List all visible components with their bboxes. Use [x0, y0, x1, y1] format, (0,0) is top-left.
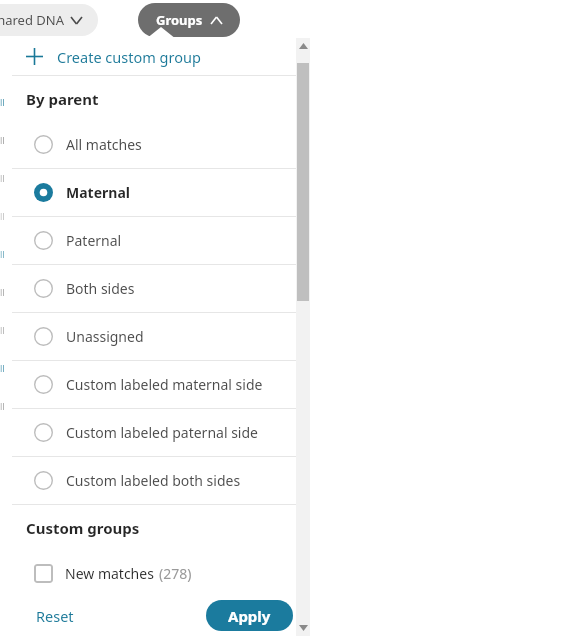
- staticText: Custom labeled maternal side: [66, 375, 263, 394]
- staticText: Custom labeled both sides: [66, 471, 241, 490]
- staticText: By parent: [26, 89, 99, 109]
- button[interactable]: Apply: [206, 600, 293, 631]
- staticText: Unassigned: [66, 327, 144, 346]
- button[interactable]: All matches: [12, 121, 310, 168]
- button[interactable]: Shared DNA: [0, 4, 98, 36]
- button[interactable]: Reset: [34, 600, 76, 632]
- button[interactable]: Scroll down: [296, 620, 310, 636]
- staticText: ll: [0, 286, 5, 298]
- staticText: ll: [0, 362, 5, 374]
- staticText: Paternal: [66, 231, 122, 250]
- staticText: (278): [159, 564, 192, 583]
- staticText: Both sides: [66, 279, 135, 298]
- button[interactable]: Create custom group: [12, 38, 310, 75]
- staticText: ll: [0, 324, 5, 336]
- button[interactable]: Maternal: [12, 169, 310, 216]
- staticText: Apply: [228, 606, 271, 626]
- button[interactable]: Scroll up: [296, 38, 310, 54]
- staticText: ll: [0, 96, 5, 108]
- staticText: Custom groups: [26, 518, 140, 538]
- staticText: Reset: [36, 606, 74, 626]
- staticText: ll: [0, 172, 5, 184]
- staticText: Custom labeled paternal side: [66, 423, 258, 442]
- staticText: New matches: [65, 564, 154, 583]
- button[interactable]: Both sides: [12, 265, 310, 312]
- staticText: Shared DNA: [0, 11, 64, 29]
- button[interactable]: Custom labeled both sides: [12, 457, 310, 504]
- staticText: ll: [0, 400, 5, 412]
- button[interactable]: New matches: [12, 551, 310, 595]
- staticText: All matches: [66, 135, 142, 154]
- staticText: Groups: [156, 11, 203, 29]
- staticText: Create custom group: [57, 47, 201, 67]
- button[interactable]: Unassigned: [12, 313, 310, 360]
- staticText: ll: [0, 248, 5, 260]
- staticText: Maternal: [66, 183, 130, 202]
- button[interactable]: Custom labeled maternal side: [12, 361, 310, 408]
- button[interactable]: Groups: [138, 3, 240, 37]
- button[interactable]: Custom labeled paternal side: [12, 409, 310, 456]
- button[interactable]: Paternal: [12, 217, 310, 264]
- staticText: ll: [0, 210, 5, 222]
- staticText: ll: [0, 134, 5, 146]
